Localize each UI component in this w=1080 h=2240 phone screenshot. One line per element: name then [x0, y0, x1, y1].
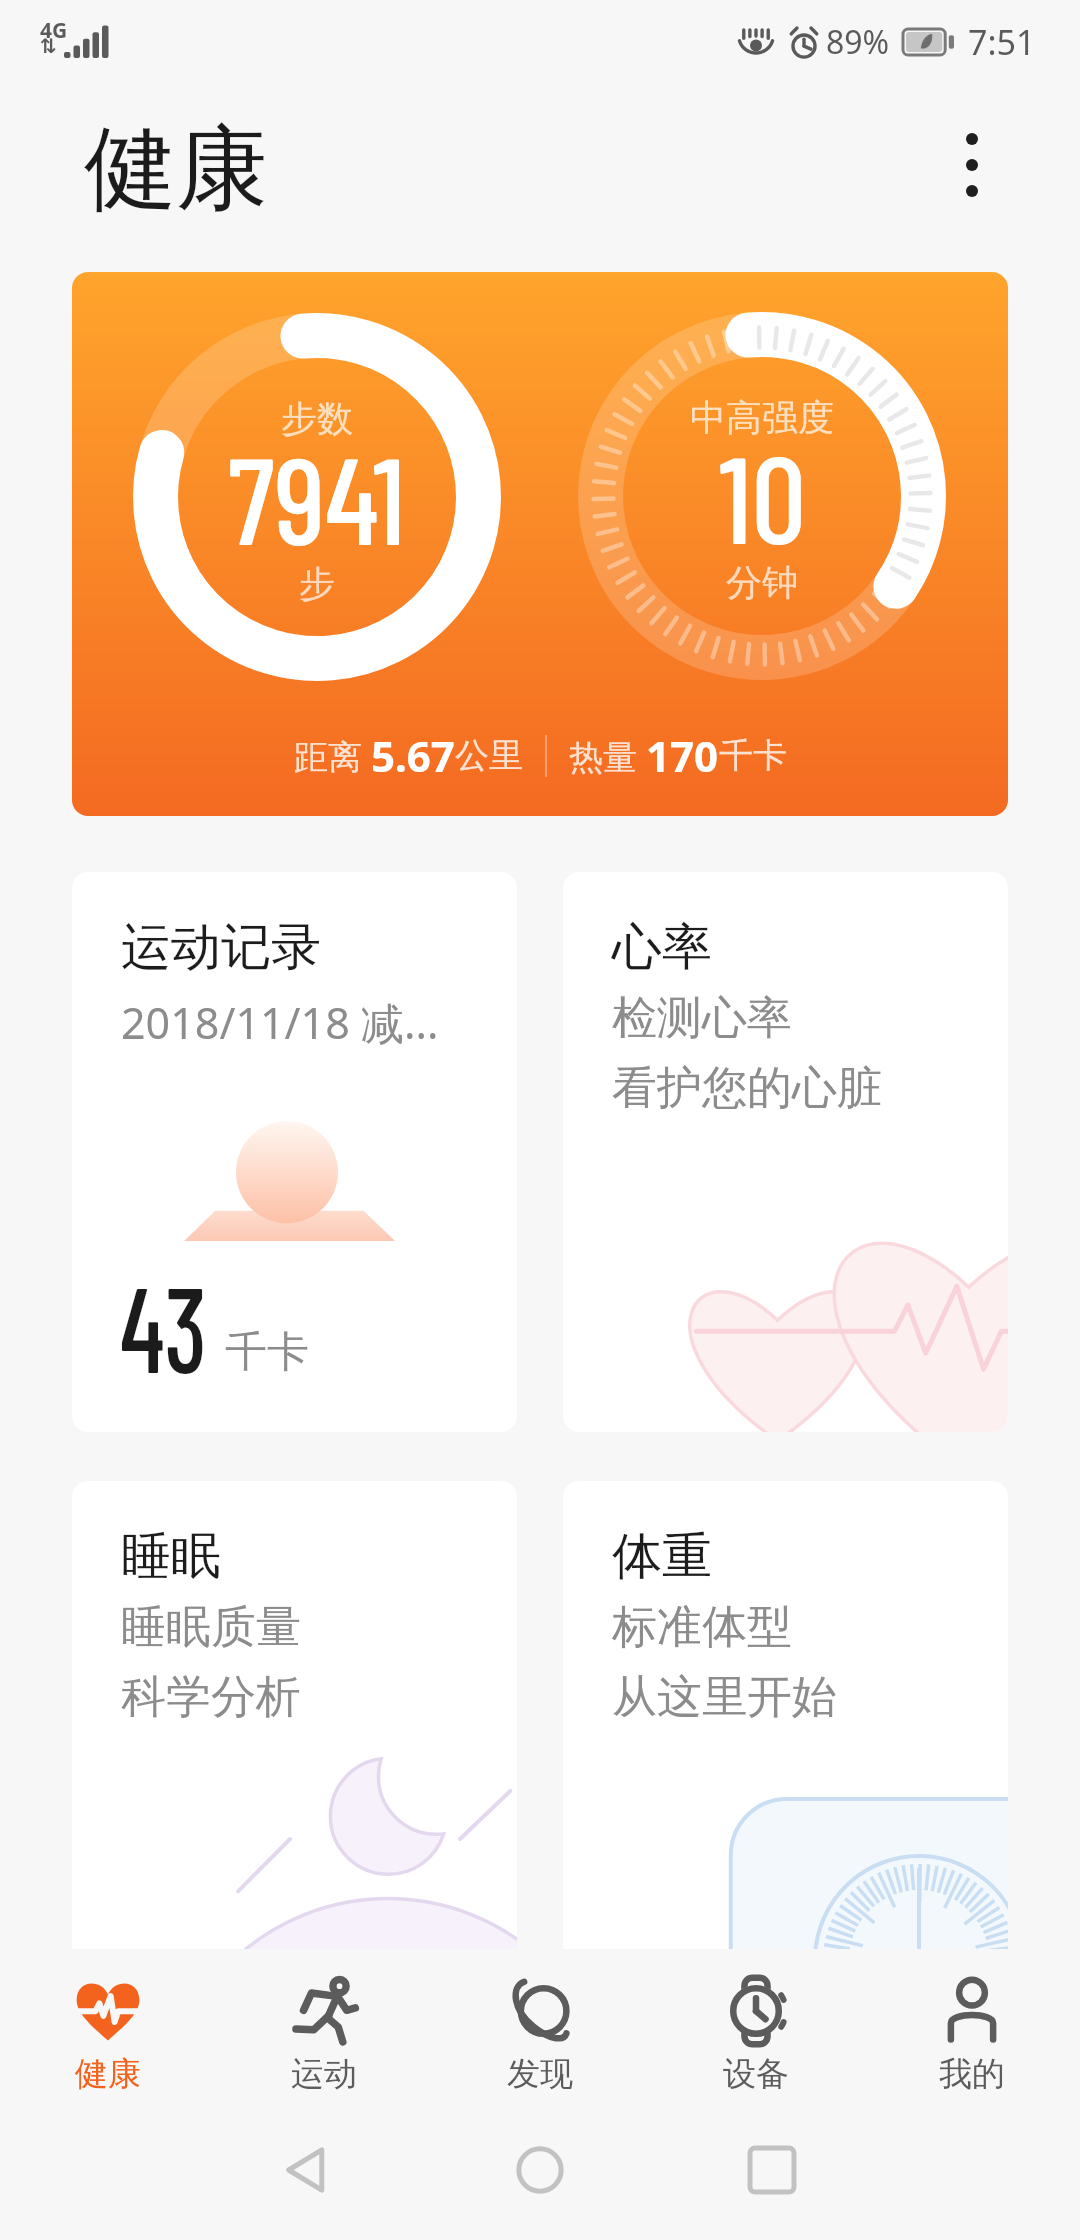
button[interactable]: 设备: [648, 1949, 864, 2100]
staticText: 10: [719, 422, 806, 568]
staticText: 热量: [569, 733, 646, 779]
staticText: 睡眠: [121, 1525, 221, 1588]
staticText: 设备: [723, 2053, 789, 2095]
staticText: 步数: [281, 396, 353, 441]
staticText: 7:51: [968, 19, 1036, 65]
button[interactable]: 运动: [216, 1949, 432, 2100]
staticText: 心率: [612, 916, 712, 979]
staticText: 从这里开始: [612, 1669, 837, 1726]
staticText: 89%: [826, 20, 890, 64]
staticText: 5.67: [371, 727, 455, 784]
staticText: 体重: [612, 1525, 712, 1588]
button[interactable]: Home: [517, 2147, 563, 2193]
staticText: 步: [299, 561, 335, 606]
button[interactable]: Recents: [750, 2148, 794, 2192]
staticText: 我的: [939, 2053, 1005, 2095]
button[interactable]: 我的: [864, 1949, 1080, 2100]
button[interactable]: Back: [285, 2147, 331, 2193]
staticText: 睡眠质量: [121, 1599, 301, 1656]
staticText: 千卡: [225, 1326, 309, 1379]
staticText: 标准体型: [612, 1599, 792, 1656]
staticText: 健康: [84, 111, 268, 227]
button[interactable]: 标准体型: [563, 1481, 1008, 2021]
staticText: 170: [646, 727, 719, 784]
staticText: 中高强度: [690, 395, 834, 440]
staticText: 千卡: [719, 734, 787, 777]
staticText: 分钟: [726, 560, 798, 605]
staticText: 4G: [40, 16, 68, 45]
staticText: 2018/11/18 减...: [121, 993, 439, 1052]
button[interactable]: More options: [930, 123, 1014, 207]
button[interactable]: 检测心率: [563, 872, 1008, 1432]
staticText: 运动: [291, 2053, 357, 2095]
staticText: 7941: [228, 423, 406, 569]
button[interactable]: 步数: [72, 272, 1008, 816]
button[interactable]: 发现: [432, 1949, 648, 2100]
staticText: 科学分析: [121, 1669, 301, 1726]
staticText: 公里: [455, 734, 523, 777]
staticText: 检测心率: [612, 990, 792, 1047]
staticText: 健康: [75, 2053, 141, 2095]
staticText: 运动记录: [121, 916, 321, 979]
button[interactable]: 睡眠质量: [72, 1481, 517, 2021]
staticText: 看护您的心脏: [612, 1060, 882, 1117]
button[interactable]: 健康: [0, 1949, 216, 2100]
staticText: 43: [120, 1253, 207, 1397]
staticText: 发现: [507, 2053, 573, 2095]
staticText: 距离: [294, 733, 371, 779]
staticText: ⇅: [40, 34, 57, 57]
button[interactable]: 2018/11/18 减...: [72, 872, 517, 1432]
